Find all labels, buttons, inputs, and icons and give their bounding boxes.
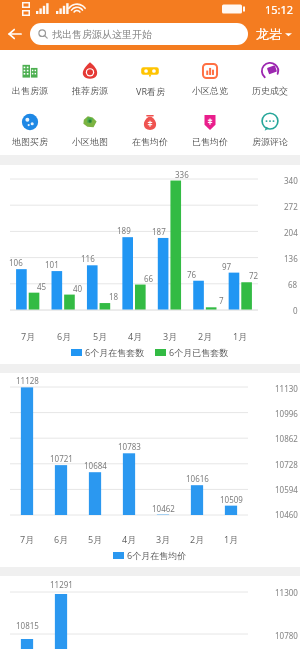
staticText: 在售均价 [132,136,168,147]
button[interactable]: 6个月在售套数 [71,346,145,358]
staticText: 116 [81,253,95,264]
staticText: 已售均价 [192,136,228,147]
staticText: 136 [284,253,298,264]
staticText: 10862 [275,433,298,444]
button[interactable]: 房源评论 [240,109,300,149]
staticText: 18 [109,291,119,302]
staticText: 小区地图 [72,136,108,147]
staticText: 11300 [275,587,298,598]
staticText: 66 [144,273,154,284]
staticText: 187 [152,226,166,237]
button[interactable]: 地图买房 [0,109,60,149]
staticText: 小区总览 [192,85,228,96]
staticText: 出售房源 [12,85,48,96]
staticText: 2月 [198,330,213,342]
staticText: 5月 [88,533,103,545]
staticText: 15:12 [265,2,294,17]
staticText: 10594 [275,484,298,495]
staticText: 10783 [118,441,141,452]
staticText: 272 [284,201,298,212]
staticText: 找出售房源从这里开始 [52,28,152,41]
staticText: 1月 [233,330,248,342]
button[interactable]: 出售房源 [0,58,60,98]
staticText: 189 [117,225,131,236]
button[interactable]: 小区地图 [60,109,120,149]
staticText: 40 [73,283,83,294]
button[interactable]: 小区总览 [180,58,240,98]
staticText: 76 [187,269,197,280]
staticText: 336 [175,169,189,180]
staticText: 历史成交 [252,85,288,96]
staticText: 6个月在售套数 [85,346,145,358]
staticText: 7 [219,295,224,306]
button[interactable]: 找出售房源从这里开始 [30,23,248,45]
staticText: 11291 [50,579,73,590]
staticText: 11128 [16,375,39,386]
staticText: 10815 [16,620,39,631]
button[interactable]: 龙岩 [248,26,300,42]
staticText: 204 [284,227,298,238]
staticText: 10996 [275,408,298,419]
staticText: 7月 [20,533,35,545]
staticText: 2月 [190,533,205,545]
staticText: 10780 [275,630,298,641]
staticText: 6月 [54,533,69,545]
staticText: 10684 [84,460,107,471]
staticText: 5月 [93,330,108,342]
staticText: 11130 [275,383,298,394]
staticText: 10728 [275,459,298,470]
staticText: 3月 [156,533,171,545]
button[interactable]: 历史成交 [240,58,300,98]
staticText: 101 [45,259,59,270]
button[interactable]: 已售均价 [180,109,240,149]
staticText: VR看房 [136,85,165,97]
staticText: 72 [249,270,259,281]
staticText: 6个月在售均价 [127,549,187,561]
button[interactable]: 6个月已售套数 [155,346,229,358]
button[interactable]: 推荐房源 [60,58,120,98]
staticText: 龙岩 [256,26,282,42]
staticText: 推荐房源 [72,85,108,96]
staticText: 0 [293,305,298,316]
staticText: 地图买房 [12,136,48,147]
staticText: 10462 [152,503,175,514]
button[interactable]: Back [0,19,30,49]
staticText: 97 [222,261,232,272]
staticText: 106 [9,257,23,268]
button[interactable]: 6个月在售均价 [113,549,187,561]
button[interactable]: VR看房 [120,58,180,99]
staticText: 45 [37,281,47,292]
staticText: 10460 [275,509,298,520]
staticText: 6月 [57,330,72,342]
staticText: 3月 [163,330,178,342]
staticText: 4月 [122,533,137,545]
staticText: 4月 [128,330,143,342]
staticText: 1月 [224,533,239,545]
staticText: 340 [284,175,298,186]
staticText: 10616 [186,473,209,484]
staticText: 房源评论 [252,136,288,147]
staticText: 10721 [50,453,73,464]
staticText: 6个月已售套数 [169,346,229,358]
button[interactable]: 在售均价 [120,109,180,149]
staticText: 68 [288,279,298,290]
staticText: 7月 [21,330,36,342]
staticText: 10509 [220,494,243,505]
